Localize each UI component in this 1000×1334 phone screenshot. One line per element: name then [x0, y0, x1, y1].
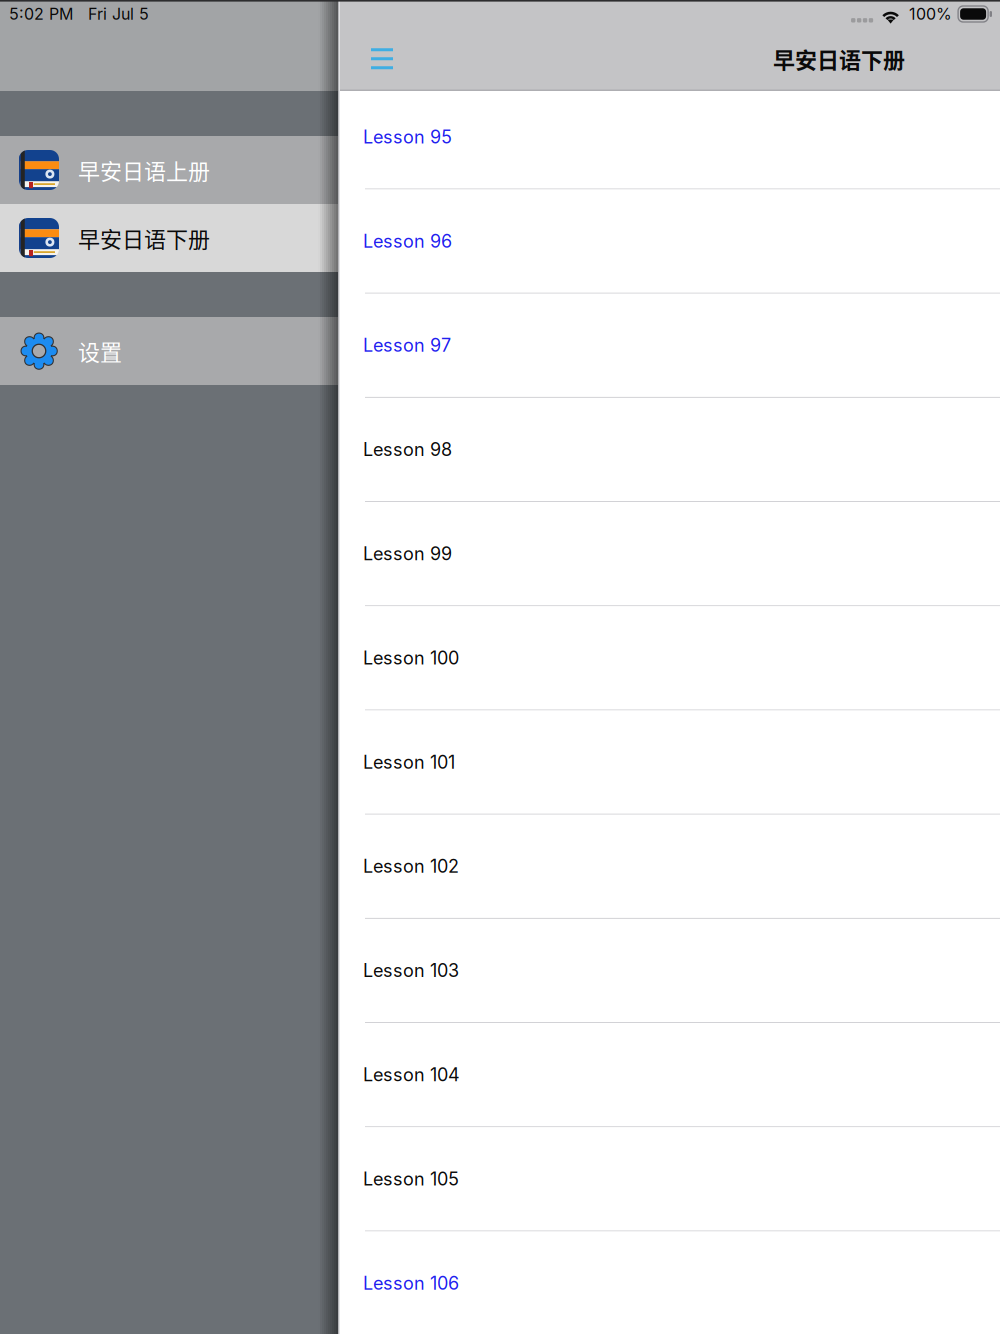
button[interactable]: Lesson 97 [338, 294, 1000, 398]
button[interactable]: Lesson 103 [338, 919, 1000, 1023]
button[interactable]: Lesson 105 [338, 1127, 1000, 1231]
button[interactable]: Lesson 99 [338, 502, 1000, 606]
staticText: Lesson 95 [363, 126, 452, 148]
staticText: 早安日语下册 [78, 222, 210, 254]
button[interactable]: Lesson 98 [338, 398, 1000, 502]
staticText: Fri Jul 5 [88, 4, 149, 24]
staticText: Lesson 102 [363, 855, 459, 877]
button[interactable]: Lesson 104 [338, 1023, 1000, 1127]
staticText: Lesson 97 [363, 334, 451, 356]
staticText: 早安日语上册 [78, 154, 210, 186]
staticText: Lesson 99 [363, 543, 452, 565]
staticText: 早安日语下册 [773, 43, 905, 75]
button[interactable]: Lesson 106 [338, 1231, 1000, 1334]
staticText: 100% [909, 4, 952, 24]
button[interactable]: Lesson 100 [338, 606, 1000, 710]
button[interactable]: Show sidebar [360, 37, 404, 81]
button[interactable]: Lesson 95 [338, 85, 1000, 189]
staticText: Lesson 98 [363, 439, 452, 460]
button[interactable]: 设置 [0, 317, 338, 385]
button[interactable]: 早安日语下册 [0, 204, 338, 272]
staticText: Lesson 101 [363, 751, 455, 773]
staticText: Lesson 105 [363, 1168, 459, 1190]
button[interactable]: Lesson 96 [338, 189, 1000, 294]
button[interactable]: Lesson 102 [338, 815, 1000, 919]
staticText: Lesson 100 [363, 647, 459, 669]
staticText: 5:02 PM [9, 4, 73, 24]
button[interactable]: Lesson 101 [338, 710, 1000, 815]
staticText: Lesson 103 [363, 960, 459, 981]
staticText: Lesson 106 [363, 1272, 459, 1294]
staticText: 设置 [78, 335, 122, 367]
button[interactable]: 早安日语上册 [0, 136, 338, 204]
staticText: Lesson 104 [363, 1064, 460, 1086]
staticText: Lesson 96 [363, 230, 452, 252]
